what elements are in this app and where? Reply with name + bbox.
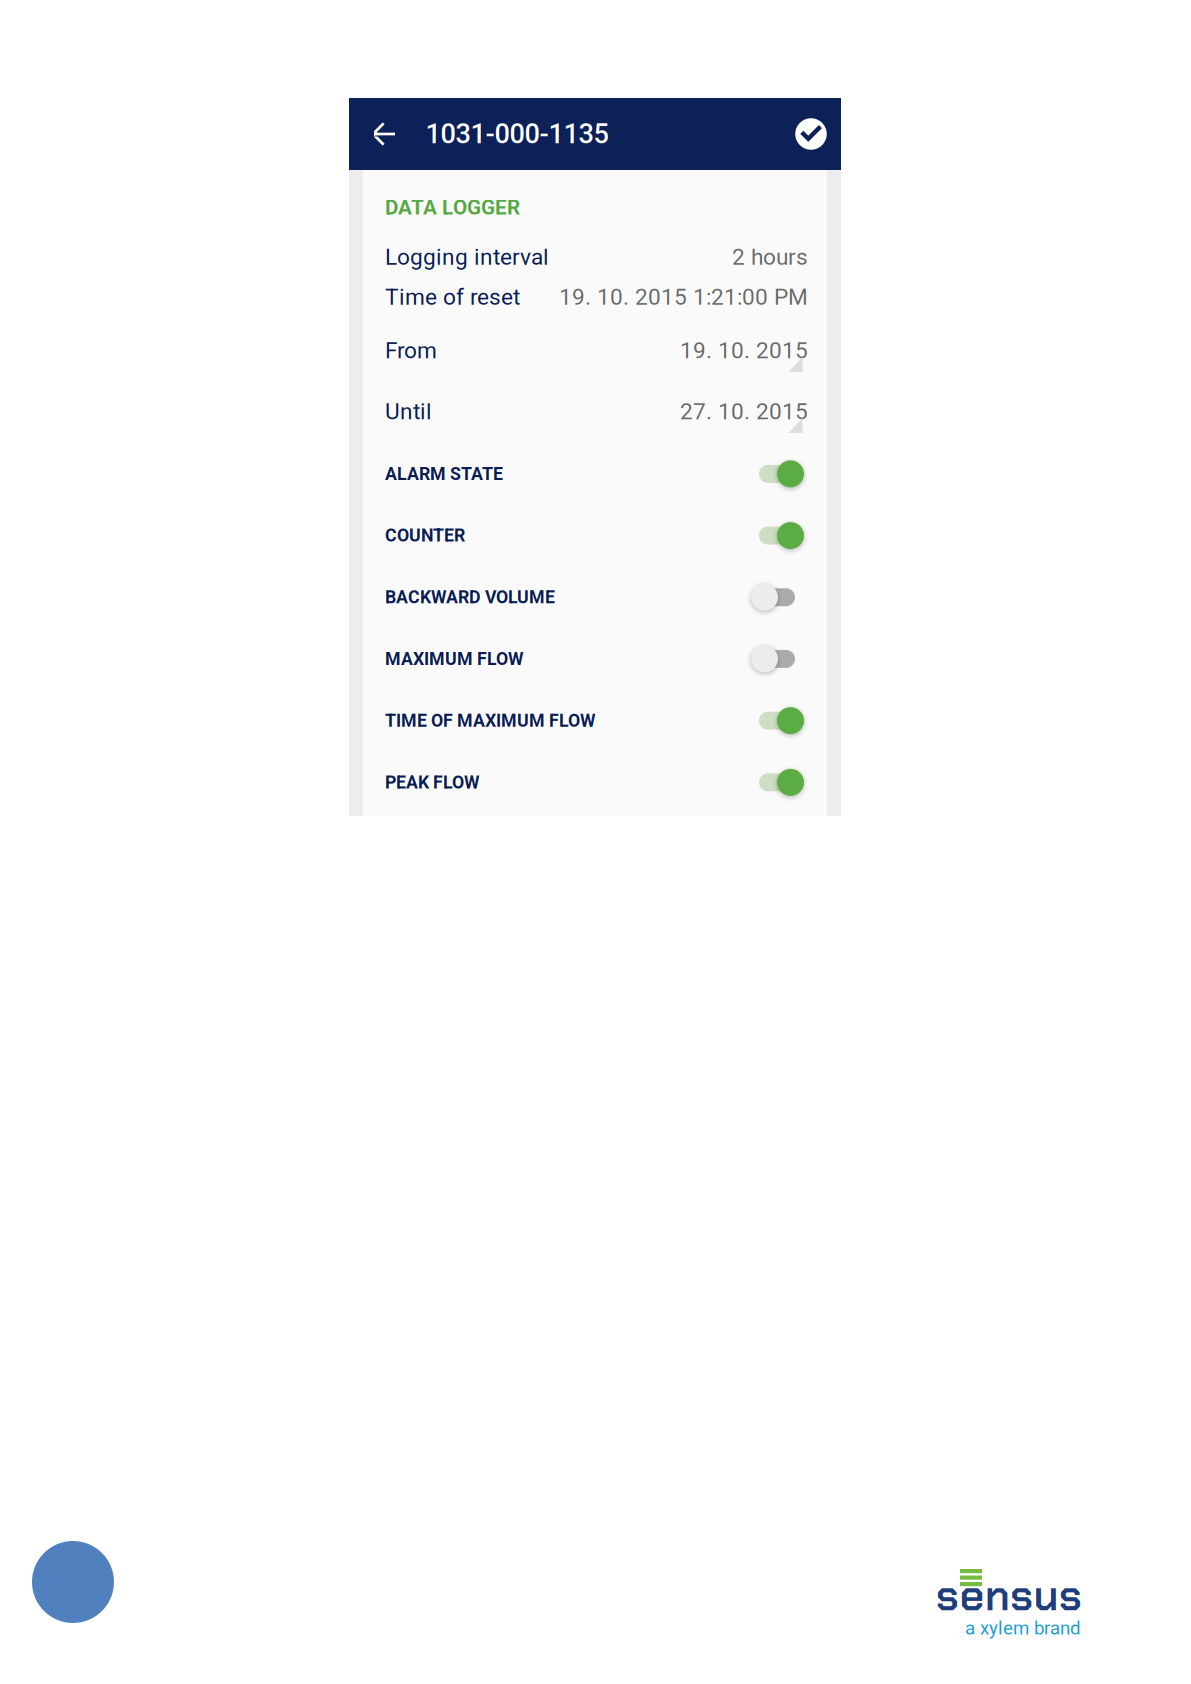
staticText: PEAK FLOW <box>385 772 480 793</box>
button[interactable]: BACKWARD VOLUME <box>363 566 827 628</box>
staticText: 19. 10. 2015 <box>680 337 808 364</box>
staticText: 1031-000-1135 <box>425 118 608 150</box>
staticText: a xylem brand <box>965 1617 1081 1639</box>
staticText: 27. 10. 2015 <box>680 398 808 425</box>
staticText: Until <box>385 398 432 425</box>
button[interactable]: Confirm <box>788 98 834 170</box>
staticText: TIME OF MAXIMUM FLOW <box>385 710 596 731</box>
button[interactable]: From <box>363 320 827 381</box>
staticText: Logging interval <box>385 244 549 270</box>
staticText: DATA LOGGER <box>385 195 520 220</box>
button[interactable]: Until <box>363 381 827 442</box>
staticText: From <box>385 337 437 364</box>
staticText: sensus <box>936 1567 1082 1623</box>
button[interactable]: PEAK FLOW <box>363 751 827 813</box>
staticText: BACKWARD VOLUME <box>385 587 555 608</box>
button[interactable]: Time of reset <box>363 277 827 317</box>
button[interactable]: Back <box>361 98 407 170</box>
button[interactable]: 1031-000-1135 <box>425 98 608 170</box>
button[interactable]: ALARM STATE <box>363 443 827 505</box>
button[interactable]: MAXIMUM FLOW <box>363 628 827 690</box>
staticText: MAXIMUM FLOW <box>385 649 524 669</box>
button[interactable]: TIME OF MAXIMUM FLOW <box>363 690 827 751</box>
staticText: 19. 10. 2015 1:21:00 PM <box>559 284 808 310</box>
button[interactable]: Logging interval <box>363 237 827 277</box>
staticText: COUNTER <box>385 525 465 546</box>
staticText: ALARM STATE <box>385 463 503 484</box>
button[interactable]: COUNTER <box>363 505 827 566</box>
staticText: Time of reset <box>385 284 520 310</box>
staticText: 2 hours <box>732 244 808 270</box>
